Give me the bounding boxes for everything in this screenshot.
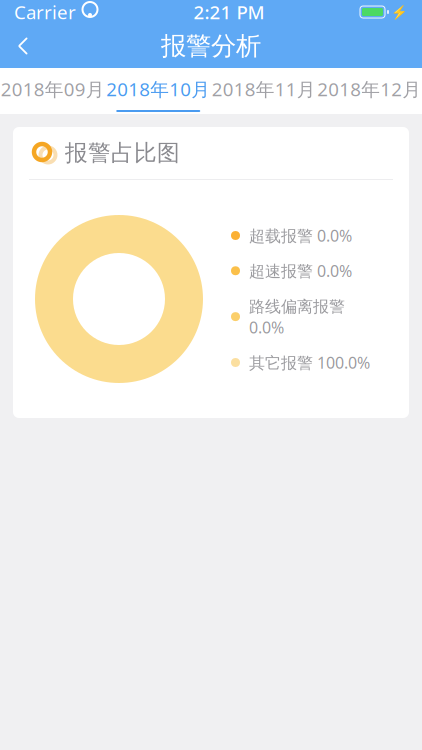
- button[interactable]: 2018年12月: [316, 68, 422, 114]
- staticText: 报警占比图: [65, 139, 180, 167]
- staticText: 路线偏离报警 0.0%: [249, 295, 345, 338]
- staticText: 超速报警 0.0%: [249, 260, 352, 281]
- staticText: 2:21 PM: [193, 0, 264, 24]
- staticText: 2018年09月: [1, 77, 105, 101]
- staticText: 2018年11月: [212, 77, 316, 101]
- button[interactable]: 2018年09月: [0, 68, 105, 114]
- staticText: 2018年10月: [106, 77, 210, 101]
- staticText: 报警分析: [161, 30, 261, 61]
- staticText: ⚡: [391, 4, 408, 20]
- button[interactable]: 2018年11月: [211, 68, 316, 114]
- staticText: 其它报警 100.0%: [249, 352, 370, 373]
- staticText: 2018年12月: [317, 77, 421, 101]
- staticText: Carrier: [14, 0, 76, 24]
- button[interactable]: Back: [0, 24, 46, 68]
- button[interactable]: 2018年10月: [105, 68, 211, 114]
- staticText: 超载报警 0.0%: [249, 225, 352, 246]
